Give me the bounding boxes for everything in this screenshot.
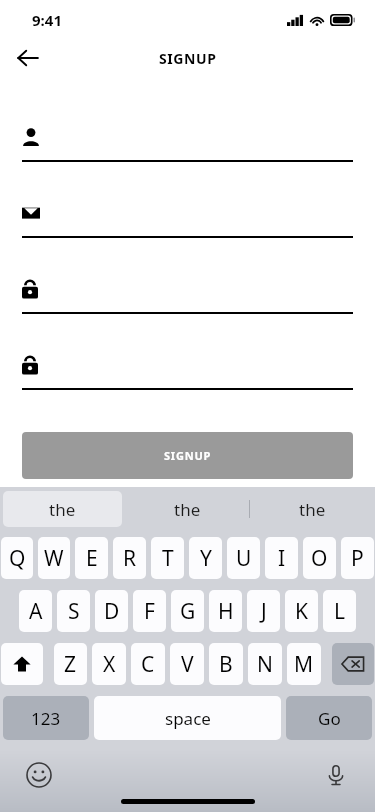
- staticText: E: [86, 544, 98, 573]
- button[interactable]: Z: [54, 643, 87, 685]
- staticText: T: [162, 544, 174, 573]
- staticText: P: [351, 544, 364, 573]
- button[interactable]: the: [250, 487, 375, 531]
- button[interactable]: P: [341, 537, 374, 579]
- button[interactable]: [22, 126, 353, 162]
- button[interactable]: Shift: [1, 643, 43, 685]
- button[interactable]: Dictation: [319, 758, 353, 792]
- staticText: the: [174, 498, 201, 521]
- button[interactable]: T: [151, 537, 184, 579]
- button[interactable]: [22, 278, 353, 314]
- button[interactable]: X: [92, 643, 126, 685]
- button[interactable]: SIGNUP: [22, 432, 353, 479]
- button[interactable]: S: [57, 590, 90, 632]
- button[interactable]: W: [38, 537, 70, 579]
- staticText: G: [180, 597, 196, 626]
- button[interactable]: M: [287, 643, 321, 685]
- button[interactable]: Go: [286, 696, 372, 740]
- button[interactable]: E: [75, 537, 108, 579]
- staticText: 123: [31, 707, 61, 730]
- staticText: Go: [318, 707, 341, 730]
- staticText: 9:41: [32, 10, 62, 30]
- staticText: N: [257, 650, 273, 679]
- button[interactable]: K: [285, 590, 318, 632]
- staticText: C: [141, 650, 155, 679]
- button[interactable]: V: [170, 643, 204, 685]
- staticText: V: [181, 650, 194, 679]
- button[interactable]: [22, 354, 353, 390]
- staticText: H: [218, 597, 234, 626]
- staticText: W: [44, 544, 64, 573]
- staticText: M: [294, 650, 314, 679]
- staticText: SIGNUP: [164, 448, 212, 463]
- button[interactable]: G: [171, 590, 204, 632]
- button[interactable]: C: [131, 643, 165, 685]
- button[interactable]: F: [133, 590, 166, 632]
- staticText: O: [311, 544, 328, 573]
- button[interactable]: H: [209, 590, 242, 632]
- button[interactable]: the: [3, 491, 122, 527]
- button[interactable]: D: [95, 590, 128, 632]
- staticText: F: [144, 597, 155, 626]
- staticText: L: [334, 597, 346, 626]
- staticText: A: [29, 597, 43, 626]
- button[interactable]: J: [247, 590, 280, 632]
- button[interactable]: Emoji: [22, 758, 56, 792]
- button[interactable]: U: [227, 537, 260, 579]
- button[interactable]: B: [209, 643, 243, 685]
- button[interactable]: the: [125, 487, 250, 531]
- staticText: Z: [64, 650, 77, 679]
- staticText: J: [261, 597, 267, 626]
- button[interactable]: Back: [8, 40, 48, 76]
- button[interactable]: I: [265, 537, 298, 579]
- staticText: X: [103, 650, 116, 679]
- staticText: the: [299, 498, 326, 521]
- button[interactable]: L: [323, 590, 356, 632]
- staticText: D: [104, 597, 120, 626]
- button[interactable]: Y: [189, 537, 222, 579]
- staticText: Y: [200, 544, 212, 573]
- staticText: S: [68, 597, 80, 626]
- staticText: Q: [9, 544, 26, 573]
- staticText: R: [123, 544, 137, 573]
- staticText: the: [49, 498, 76, 521]
- staticText: U: [236, 544, 252, 573]
- button[interactable]: Q: [1, 537, 33, 579]
- staticText: B: [219, 650, 233, 679]
- button[interactable]: O: [303, 537, 336, 579]
- button[interactable]: Backspace: [332, 643, 374, 685]
- staticText: space: [165, 707, 211, 730]
- button[interactable]: [22, 202, 353, 238]
- staticText: K: [295, 597, 308, 626]
- button[interactable]: A: [19, 590, 52, 632]
- button[interactable]: R: [113, 537, 146, 579]
- staticText: I: [278, 544, 286, 573]
- button[interactable]: space: [94, 696, 281, 740]
- button[interactable]: N: [248, 643, 282, 685]
- button[interactable]: 123: [3, 696, 89, 740]
- staticText: SIGNUP: [159, 49, 217, 68]
